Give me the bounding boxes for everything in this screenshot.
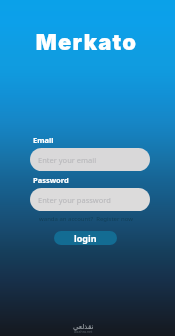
staticText: Email	[33, 135, 54, 145]
staticText: Enter your password	[38, 195, 111, 205]
button[interactable]: Enter your password	[30, 188, 150, 211]
staticText: Password	[33, 175, 69, 185]
staticText: Merkato	[0, 29, 174, 56]
staticText: login	[74, 232, 97, 244]
button[interactable]: login	[54, 231, 117, 245]
button[interactable]: Enter your email	[30, 148, 150, 171]
staticText: Enter your email	[38, 155, 97, 165]
button[interactable]: wanda an account? Register now	[39, 215, 133, 223]
staticText: نقذلعي	[73, 323, 94, 331]
staticText: alzahra.net	[74, 329, 93, 334]
